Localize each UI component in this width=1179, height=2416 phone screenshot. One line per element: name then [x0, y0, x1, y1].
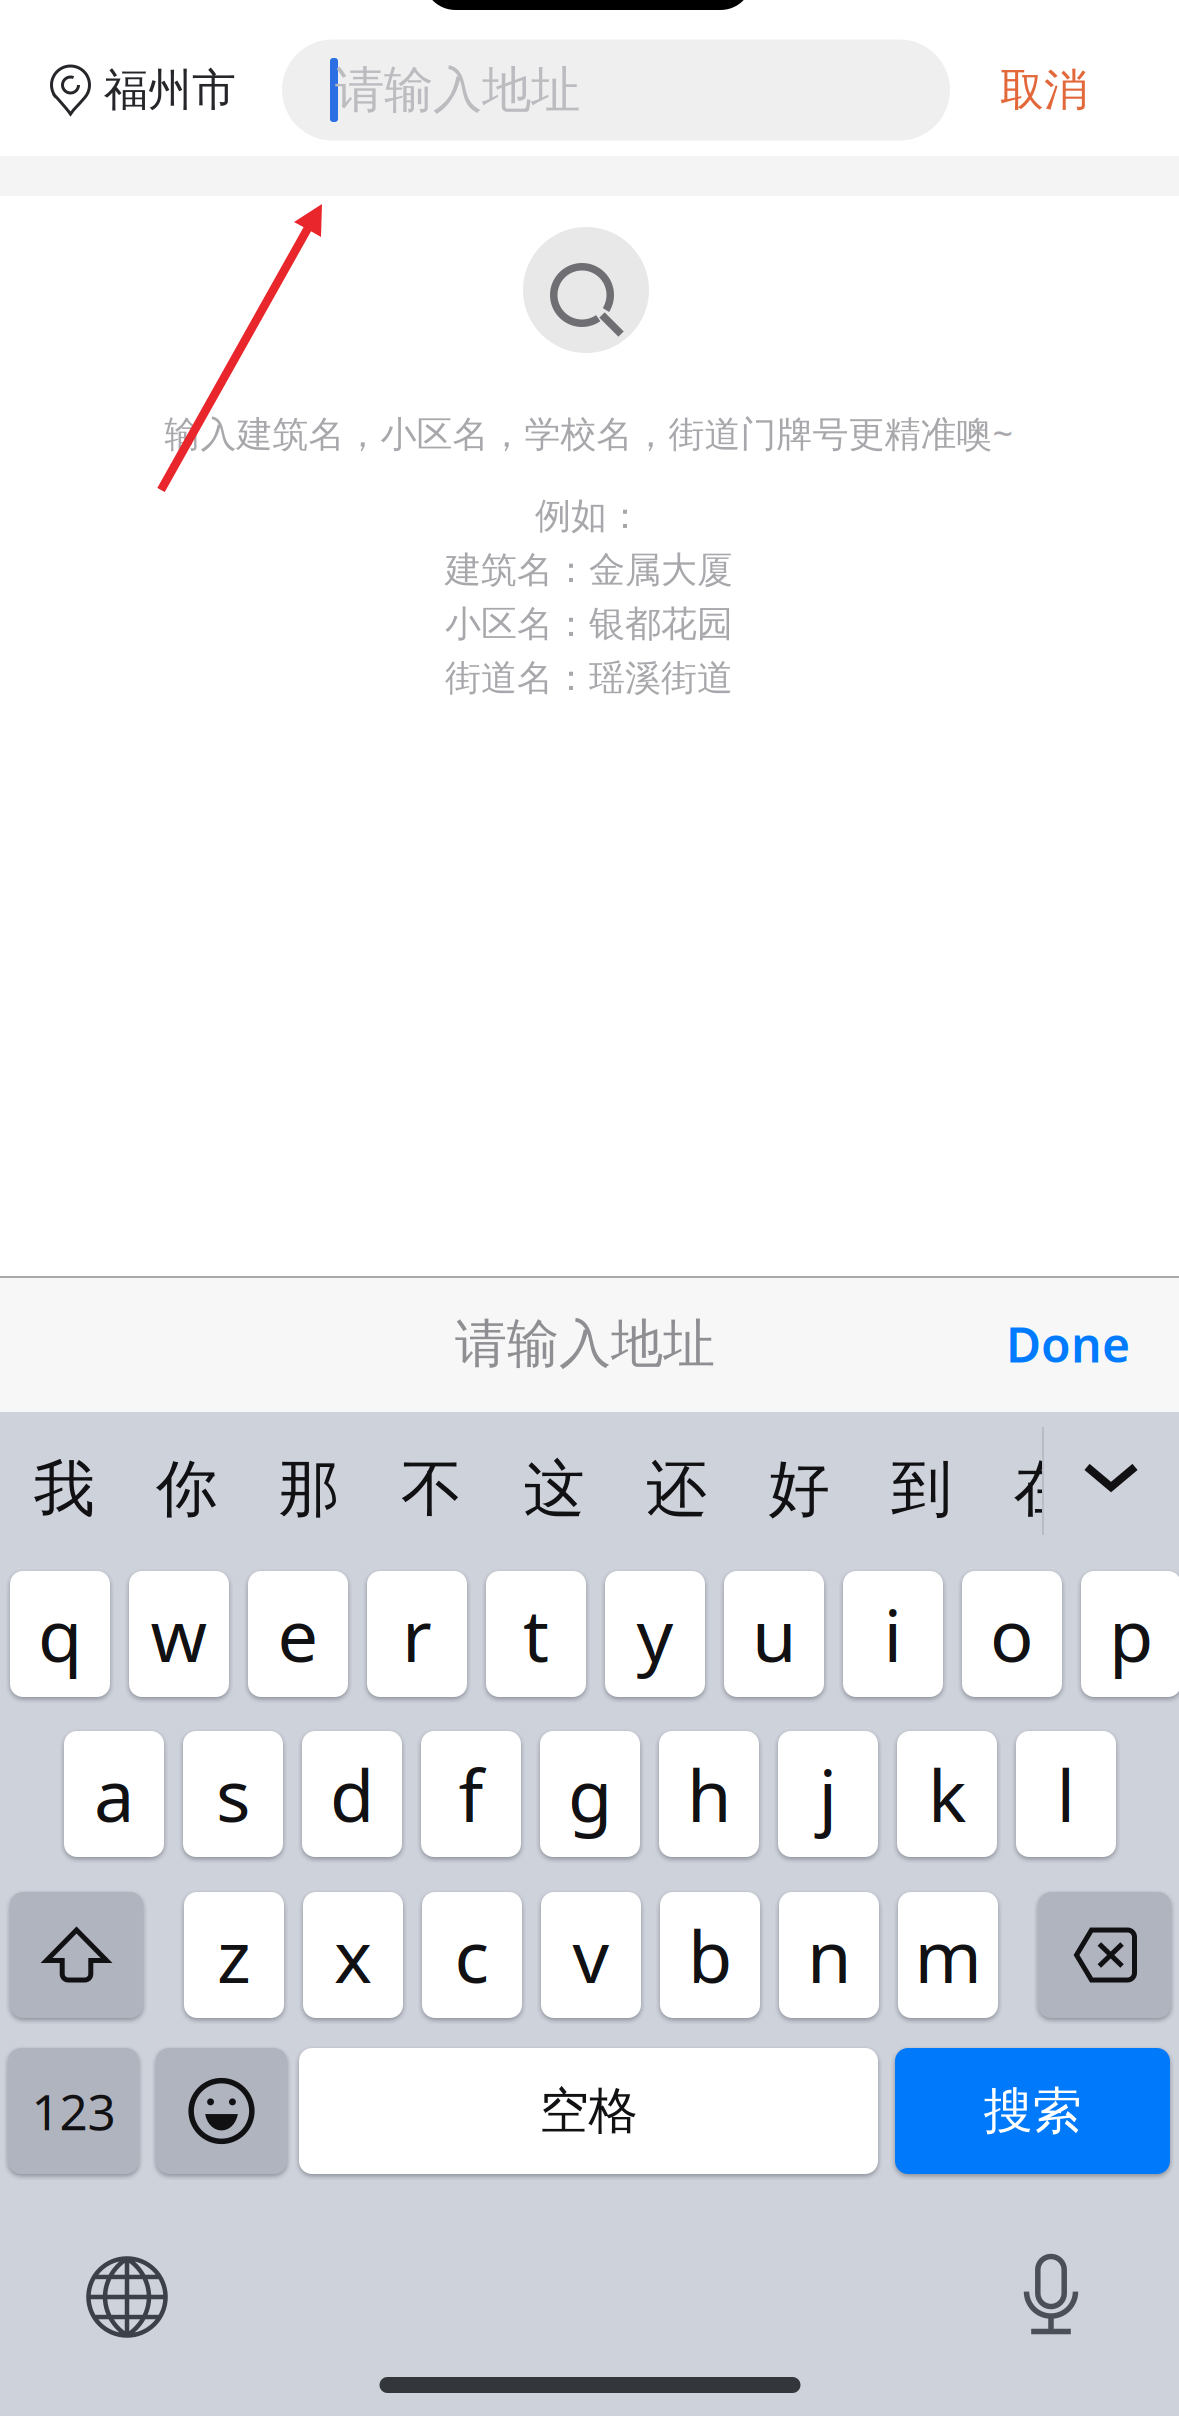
staticText: 你 — [156, 1451, 217, 1527]
button[interactable]: 你 — [127, 1419, 245, 1559]
staticText: 请输入地址 — [455, 1312, 715, 1376]
staticText: z — [217, 1907, 251, 2003]
button[interactable]: q — [10, 1571, 110, 1697]
button[interactable]: 空格 — [299, 2048, 878, 2174]
button[interactable]: i — [843, 1571, 943, 1697]
staticText: 到 — [891, 1451, 952, 1527]
button[interactable]: Next keyboard — [57, 2232, 197, 2362]
staticText: h — [687, 1746, 731, 1842]
staticText: 好 — [768, 1451, 829, 1527]
button[interactable]: j — [778, 1731, 878, 1857]
button[interactable]: 取消 — [964, 30, 1124, 150]
button[interactable]: v — [541, 1892, 641, 2018]
staticText: l — [1056, 1746, 1075, 1842]
staticText: n — [807, 1907, 851, 2003]
staticText: s — [216, 1746, 250, 1842]
staticText: k — [928, 1746, 966, 1842]
button[interactable]: w — [129, 1571, 229, 1697]
staticText: y — [636, 1586, 673, 1682]
staticText: g — [568, 1746, 612, 1842]
staticText: 小区名：银都花园 — [445, 602, 733, 646]
button[interactable]: d — [302, 1731, 402, 1857]
button[interactable]: r — [367, 1571, 467, 1697]
button[interactable]: p — [1081, 1571, 1179, 1697]
button[interactable]: Emoji — [156, 2048, 287, 2174]
staticText: 123 — [31, 2078, 115, 2144]
button[interactable]: c — [422, 1892, 522, 2018]
staticText: t — [523, 1586, 549, 1682]
staticText: 福州市 — [104, 63, 236, 117]
button[interactable]: Shift — [10, 1892, 143, 2018]
staticText: 还 — [646, 1451, 707, 1527]
staticText: 建筑名：金属大厦 — [445, 548, 733, 592]
button[interactable]: 好 — [740, 1419, 858, 1559]
staticText: Done — [1006, 1312, 1130, 1376]
staticText: 例如： — [535, 494, 643, 538]
staticText: x — [334, 1907, 372, 2003]
button[interactable]: b — [660, 1892, 760, 2018]
button[interactable]: Done — [968, 1277, 1168, 1411]
staticText: u — [752, 1586, 796, 1682]
button[interactable]: e — [248, 1571, 348, 1697]
button[interactable]: l — [1016, 1731, 1116, 1857]
button[interactable]: m — [898, 1892, 998, 2018]
staticText: m — [914, 1907, 981, 2003]
button[interactable]: g — [540, 1731, 640, 1857]
button[interactable]: 那 — [250, 1419, 368, 1559]
staticText: 搜索 — [983, 2081, 1081, 2141]
button[interactable]: n — [779, 1892, 879, 2018]
button[interactable]: 不 — [372, 1419, 490, 1559]
button[interactable]: 我 — [5, 1419, 123, 1559]
staticText: c — [454, 1907, 489, 2003]
staticText: o — [990, 1586, 1034, 1682]
staticText: 取消 — [1000, 63, 1088, 117]
button[interactable]: f — [421, 1731, 521, 1857]
button[interactable]: 在 — [985, 1419, 1103, 1559]
staticText: b — [688, 1907, 732, 2003]
button[interactable]: 还 — [617, 1419, 735, 1559]
staticText: q — [38, 1586, 82, 1682]
button[interactable]: y — [605, 1571, 705, 1697]
staticText: v — [572, 1907, 609, 2003]
staticText: 空格 — [539, 2081, 637, 2141]
staticText: w — [150, 1586, 207, 1682]
button[interactable]: 搜索 — [895, 2048, 1170, 2174]
button[interactable]: Delete — [1038, 1892, 1171, 2018]
staticText: d — [330, 1746, 374, 1842]
staticText: i — [883, 1586, 902, 1682]
button[interactable]: x — [303, 1892, 403, 2018]
button[interactable]: 福州市 — [44, 25, 259, 155]
staticText: 我 — [33, 1451, 94, 1527]
button[interactable]: h — [659, 1731, 759, 1857]
staticText: 请输入地址 — [335, 60, 580, 120]
staticText: 那 — [278, 1451, 339, 1527]
button[interactable]: u — [724, 1571, 824, 1697]
staticText: 在 — [1013, 1451, 1074, 1527]
button[interactable]: s — [183, 1731, 283, 1857]
button[interactable]: 到 — [862, 1419, 980, 1559]
staticText: r — [402, 1586, 432, 1682]
button[interactable]: z — [184, 1892, 284, 2018]
staticText: e — [277, 1586, 318, 1682]
button[interactable]: 这 — [495, 1419, 613, 1559]
staticText: 街道名：瑶溪街道 — [445, 656, 733, 700]
button[interactable]: 123 — [8, 2048, 139, 2174]
staticText: 不 — [401, 1451, 462, 1527]
staticText: j — [818, 1746, 837, 1842]
button[interactable]: t — [486, 1571, 586, 1697]
button[interactable]: k — [897, 1731, 997, 1857]
button[interactable]: o — [962, 1571, 1062, 1697]
button[interactable]: Dictation — [981, 2229, 1121, 2359]
button[interactable]: Collapse candidates — [1051, 1407, 1171, 1547]
staticText: f — [458, 1746, 483, 1842]
staticText: 输入建筑名，小区名，学校名，街道门牌号更精准噢~ — [164, 409, 1013, 457]
staticText: 这 — [523, 1451, 584, 1527]
staticText: p — [1109, 1586, 1153, 1682]
button[interactable]: a — [64, 1731, 164, 1857]
staticText: a — [94, 1746, 134, 1842]
